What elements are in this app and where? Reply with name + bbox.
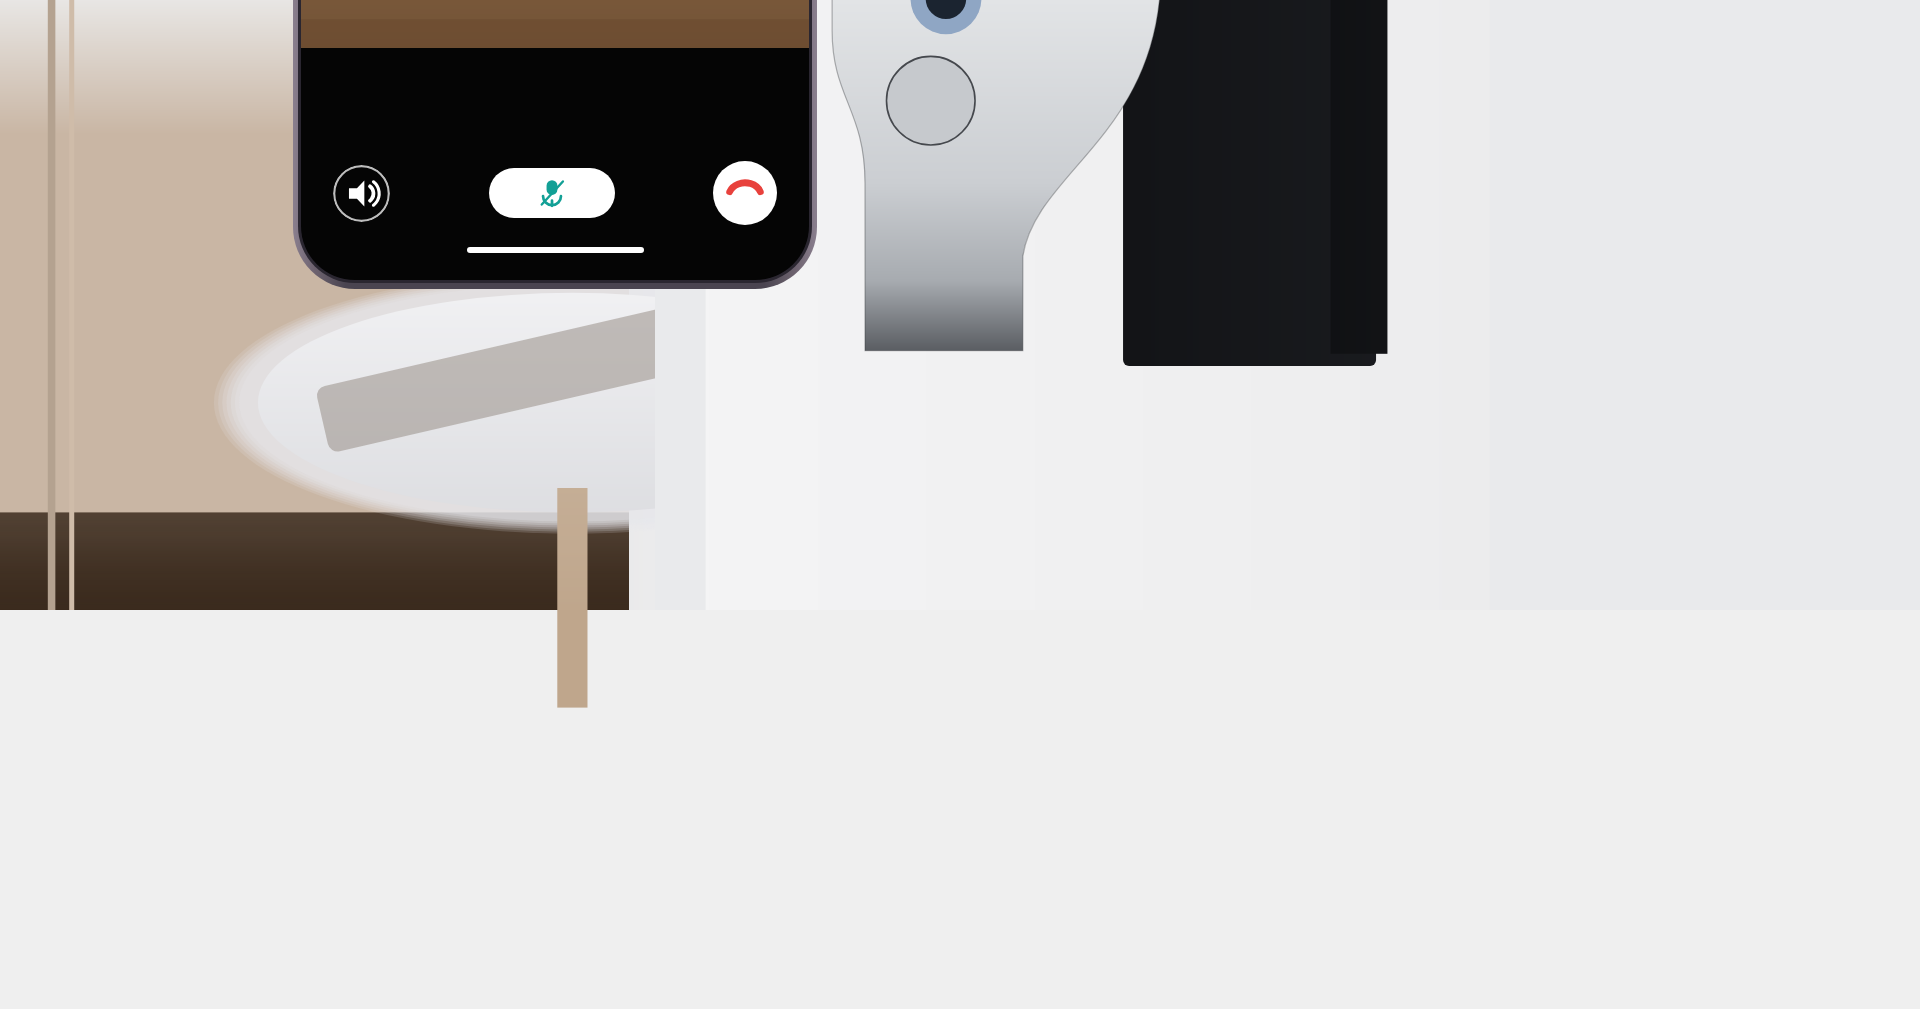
button[interactable]: Speaker	[333, 165, 390, 222]
button[interactable]: Microphone muted	[489, 168, 615, 218]
button[interactable]: End call	[713, 161, 777, 225]
